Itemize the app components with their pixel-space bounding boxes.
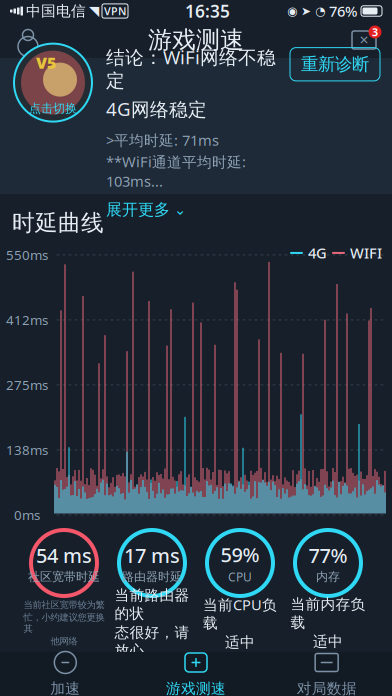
staticText: 4G xyxy=(308,243,327,263)
button[interactable]: 游戏测速 xyxy=(131,652,261,696)
staticText: ✕ xyxy=(359,33,369,47)
staticText: 忙，小约建议您更换其 xyxy=(23,611,104,634)
staticText: 当前内存负载 xyxy=(290,595,365,631)
staticText: 412ms xyxy=(6,311,48,329)
staticText: 游戏测速 xyxy=(166,679,226,696)
staticText: 适中 xyxy=(313,632,343,650)
staticText: 当前路由器的状 xyxy=(114,586,189,622)
staticText: 138ms xyxy=(6,441,48,459)
staticText: **WiFi通道平均时延: 103ms... xyxy=(106,152,246,191)
staticText: 550ms xyxy=(6,246,48,264)
staticText: 态很好，请放心 xyxy=(114,623,189,659)
staticText: ◥ xyxy=(89,3,99,18)
staticText: 77% xyxy=(308,542,347,568)
staticText: 当前CPU负载 xyxy=(203,595,277,632)
staticText: ◉ xyxy=(287,4,297,18)
staticText: 3 xyxy=(372,25,378,39)
staticText: 76% xyxy=(329,1,357,21)
staticText: 游戏测速 xyxy=(148,25,244,55)
staticText: 路由器时延 xyxy=(122,569,182,584)
staticText: 54 ms xyxy=(36,542,92,568)
staticText: 59% xyxy=(220,541,259,568)
staticText: ◔ xyxy=(315,4,325,18)
staticText: WIFI xyxy=(350,243,382,263)
staticText: 他网络 xyxy=(50,635,77,647)
staticText: 社区宽带时延 xyxy=(28,569,100,584)
staticText: >平均时延: 71ms xyxy=(106,130,219,150)
button[interactable]: 账号 xyxy=(8,22,48,58)
button[interactable]: 重新诊断 xyxy=(290,48,380,81)
button[interactable]: 对局数据 xyxy=(261,652,392,696)
staticText: 时延曲线 xyxy=(12,209,104,237)
staticText: 对局数据 xyxy=(297,679,357,696)
staticText: 适中 xyxy=(225,633,255,651)
button[interactable]: 展开更多 xyxy=(106,191,186,219)
staticText: 当前社区宽带较为繁 xyxy=(23,599,104,611)
staticText: 4G网络稳定 xyxy=(106,96,207,121)
staticText: 点击切换 xyxy=(29,101,77,116)
staticText: 0ms xyxy=(14,506,40,524)
staticText: CPU xyxy=(228,569,252,585)
staticText: VPN xyxy=(104,4,126,18)
staticText: ⌄ xyxy=(174,201,186,218)
staticText: 展开更多 xyxy=(106,200,170,219)
staticText: 结论：WiFi网络不稳定 xyxy=(106,45,276,92)
staticText: 16:35 xyxy=(185,0,230,22)
staticText: 内存 xyxy=(316,569,340,584)
staticText: 275ms xyxy=(6,376,48,394)
button[interactable]: 加速 xyxy=(0,652,131,696)
staticText: 17 ms xyxy=(124,542,180,568)
staticText: 加速 xyxy=(50,679,80,696)
staticText: 重新诊断 xyxy=(301,54,369,75)
staticText: ➤ xyxy=(301,4,311,18)
button[interactable]: 消息 xyxy=(344,22,384,58)
staticText: V5 xyxy=(36,52,56,73)
staticText: 中国电信 xyxy=(26,2,86,20)
button[interactable]: 点击切换角色 xyxy=(8,33,98,133)
